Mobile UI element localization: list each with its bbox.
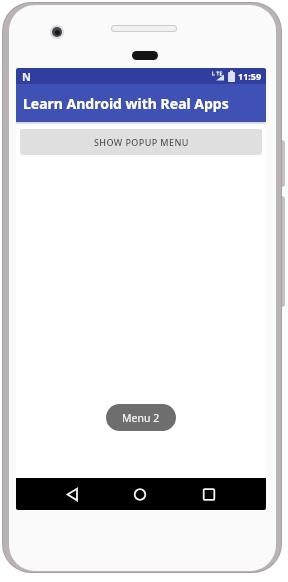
staticText: SHOW POPUP MENU — [94, 136, 189, 148]
button[interactable]: SHOW POPUP MENU — [20, 129, 262, 154]
staticText: 11:59 — [238, 70, 262, 82]
button[interactable] — [124, 478, 156, 510]
staticText: Learn Android with Real Apps — [23, 94, 229, 113]
staticText: Menu 2 — [122, 411, 160, 425]
button[interactable] — [193, 478, 225, 510]
button[interactable]: Menu 2 — [106, 404, 176, 431]
button[interactable] — [56, 478, 88, 510]
staticText: N — [22, 69, 31, 84]
